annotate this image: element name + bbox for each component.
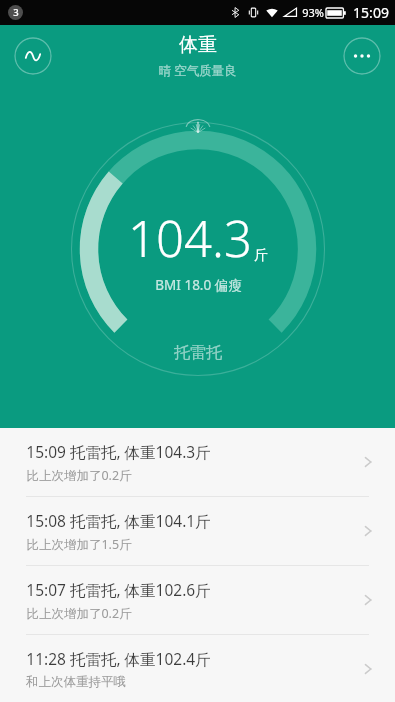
staticText: 体重 <box>179 33 217 57</box>
button[interactable]: 15:07 托雷托, 体重102.6斤 <box>0 566 395 634</box>
button[interactable]: 11:28 托雷托, 体重102.4斤 <box>0 635 395 702</box>
staticText: 比上次增加了0.2斤 <box>26 467 132 484</box>
button[interactable]: More options <box>343 37 381 75</box>
button[interactable]: 15:09 托雷托, 体重104.3斤 <box>0 428 395 496</box>
staticText: 15:09 <box>353 3 389 22</box>
staticText: 比上次增加了1.5斤 <box>26 536 132 553</box>
other: Details <box>361 524 375 538</box>
staticText: 104.3 <box>128 205 252 272</box>
button[interactable]: 15:08 托雷托, 体重104.1斤 <box>0 497 395 565</box>
staticText: 15:08 托雷托, 体重104.1斤 <box>26 510 211 531</box>
staticText: BMI 18.0 偏瘦 <box>155 276 242 294</box>
staticText: 比上次增加了0.2斤 <box>26 605 132 622</box>
staticText: 15:07 托雷托, 体重102.6斤 <box>26 579 211 600</box>
staticText: 3 <box>13 6 19 19</box>
staticText: 11:28 托雷托, 体重102.4斤 <box>26 648 211 669</box>
staticText: 托雷托 <box>174 343 222 363</box>
other: Details <box>361 662 375 676</box>
staticText: 晴 空气质量良 <box>158 62 237 79</box>
other: Details <box>361 593 375 607</box>
staticText: 93% <box>302 5 324 20</box>
staticText: 和上次体重持平哦 <box>26 674 126 690</box>
button[interactable]: Trend chart <box>14 37 52 75</box>
other: Details <box>361 455 375 469</box>
staticText: 斤 <box>254 247 268 265</box>
staticText: 15:09 托雷托, 体重104.3斤 <box>26 441 211 462</box>
